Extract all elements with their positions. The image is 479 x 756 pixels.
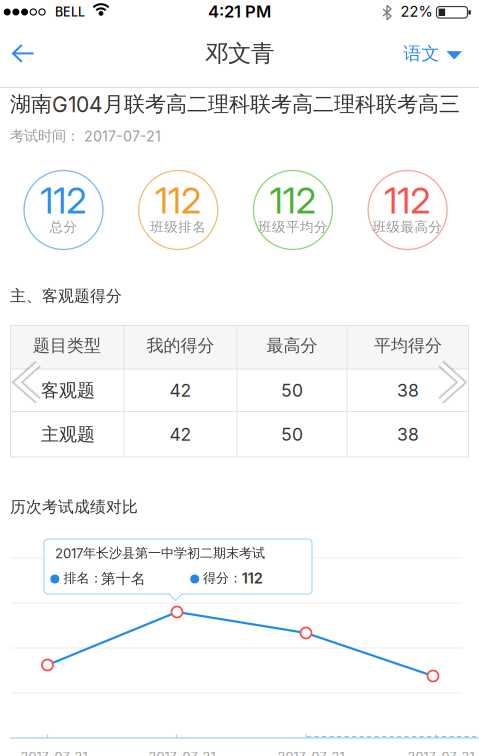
staticText: 总分 <box>49 218 77 235</box>
staticText: 客观题 <box>41 379 95 402</box>
staticText: 主、客观题得分 <box>10 286 122 306</box>
staticText: 112 <box>269 179 316 222</box>
staticText: 112 <box>242 569 263 587</box>
staticText: 得分： <box>203 570 242 586</box>
staticText: BELL <box>55 4 85 19</box>
staticText: 2017-07-21 <box>277 749 344 756</box>
staticText: 平均得分 <box>374 335 442 356</box>
staticText: 最高分 <box>266 335 317 356</box>
staticText: 语文 <box>403 42 439 65</box>
staticText: 112 <box>384 179 431 222</box>
staticText: 2017-07-21 <box>20 749 87 756</box>
staticText: 38 <box>397 380 419 401</box>
staticText: 历次考试成绩对比 <box>10 497 138 517</box>
staticText: 22% <box>400 3 432 20</box>
staticText: 50 <box>281 380 303 401</box>
staticText: 排名： <box>63 570 102 586</box>
button[interactable]: 下一页 <box>437 354 477 410</box>
staticText: 2017-07-21 <box>407 749 474 756</box>
staticText: 2017年长沙县第一中学初二期末考试 <box>55 545 265 561</box>
button[interactable]: 上一页 <box>2 354 42 410</box>
staticText: 湖南G104月联考高二理科联考高二理科联考高三 <box>10 91 460 117</box>
staticText: 班级排名 <box>150 218 206 235</box>
staticText: 第十名 <box>101 569 146 588</box>
staticText: 4:21 PM <box>208 1 271 22</box>
staticText: 38 <box>397 424 419 445</box>
staticText: 班级最高分 <box>373 218 443 235</box>
staticText: 112 <box>40 179 87 222</box>
staticText: 题目类型 <box>33 335 101 356</box>
staticText: 112 <box>155 179 202 222</box>
staticText: 我的得分 <box>146 335 214 356</box>
staticText: 50 <box>281 424 303 445</box>
button[interactable]: Back <box>4 31 48 75</box>
staticText: 42 <box>169 424 191 445</box>
button[interactable]: 语文 选择科目 <box>393 28 469 78</box>
staticText: 班级平均分 <box>258 218 328 235</box>
staticText: 主观题 <box>41 423 95 446</box>
staticText: 考试时间： 2017-07-21 <box>10 127 161 145</box>
staticText: 邓文青 <box>205 39 274 68</box>
staticText: 2017-07-21 <box>148 749 215 756</box>
staticText: 42 <box>169 380 191 401</box>
